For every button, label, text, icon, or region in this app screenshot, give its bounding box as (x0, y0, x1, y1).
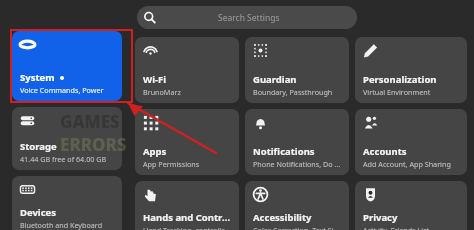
staticText: Virtual Environment (363, 87, 431, 97)
button[interactable]: Privacy (355, 181, 467, 230)
staticText: Phone Notifications, Do Not Di. (253, 159, 341, 169)
button[interactable]: Notifications (245, 109, 349, 175)
other: Personalization (363, 43, 378, 58)
other: Accounts (363, 115, 378, 130)
other: Storage (20, 113, 35, 128)
button[interactable]: Apps (135, 109, 239, 175)
staticText: Bluetooth and Keyboard (20, 220, 103, 230)
staticText: Search Settings (218, 12, 280, 24)
staticText: Voice Commands, Power (20, 85, 104, 95)
staticText: Activity, Friends List (363, 225, 430, 230)
staticText: BrunoMarz (143, 87, 181, 97)
staticText: App Permissions (143, 159, 200, 169)
other: Accessibility (253, 187, 268, 202)
staticText: Boundary, Passthrough (253, 87, 333, 97)
staticText: System (20, 71, 55, 84)
staticText: Storage (20, 140, 57, 153)
staticText: ERRORS (60, 133, 127, 156)
other: Search (143, 11, 156, 24)
staticText: Accounts (363, 145, 407, 158)
staticText: Accessibility (253, 211, 312, 224)
staticText: Personalization (363, 73, 437, 86)
button[interactable]: Personalization (355, 37, 467, 103)
button[interactable]: Search (137, 6, 357, 29)
staticText: Color Correction, Text Size (253, 225, 341, 230)
staticText: 41.44 GB free of 64.00 GB (20, 154, 107, 164)
button[interactable]: Storage (12, 107, 122, 170)
other: Wi-Fi (143, 43, 158, 58)
other: Hands and Controllers (143, 187, 158, 202)
staticText: Guardian (253, 73, 297, 86)
button[interactable]: Accounts (355, 109, 467, 175)
button[interactable]: Hands and Controllers (135, 181, 239, 230)
staticText: GAMES (60, 110, 120, 133)
button[interactable]: Devices (12, 176, 122, 230)
staticText: Apps (143, 145, 167, 158)
staticText: Hand Tracking, controller opti. (143, 225, 231, 230)
button[interactable]: Accessibility (245, 181, 349, 230)
other: Apps (143, 115, 158, 130)
staticText: Privacy (363, 211, 398, 224)
staticText: Hands and Controllers (143, 211, 231, 224)
other: System (20, 37, 35, 52)
staticText: Add Account, App Sharing (363, 159, 451, 169)
staticText: Wi-Fi (143, 73, 167, 86)
button[interactable]: Wi-Fi (135, 37, 239, 103)
other: Guardian (253, 43, 268, 58)
staticText: Notifications (253, 145, 315, 158)
other: Devices (20, 182, 35, 197)
button[interactable]: System (12, 31, 122, 101)
staticText: Devices (20, 206, 57, 219)
other: Privacy (363, 187, 378, 202)
other: Notifications (253, 115, 268, 130)
button[interactable]: Guardian (245, 37, 349, 103)
